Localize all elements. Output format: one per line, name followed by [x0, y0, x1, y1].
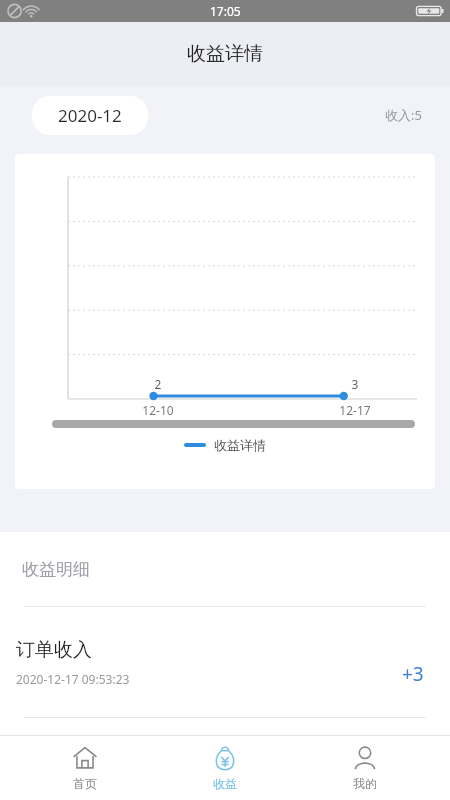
- staticText: 收益详情: [187, 42, 263, 66]
- staticText: 12-10: [132, 402, 184, 418]
- button[interactable]: 首页: [30, 745, 140, 791]
- staticText: 3: [343, 376, 367, 392]
- button[interactable]: 我的: [310, 745, 420, 791]
- staticText: 首页: [73, 776, 97, 791]
- staticText: 收益明细: [22, 559, 90, 580]
- staticText: 17:05: [210, 3, 241, 19]
- staticText: 2020-12: [58, 104, 122, 127]
- button[interactable]: 订单收入: [0, 607, 450, 717]
- staticText: 订单收入: [16, 638, 92, 662]
- staticText: 收益详情: [214, 437, 266, 453]
- staticText: 收入:5: [385, 106, 422, 124]
- staticText: 我的: [353, 776, 377, 791]
- staticText: 2020-12-17 09:53:23: [16, 671, 130, 687]
- staticText: 12-17: [329, 402, 381, 418]
- button[interactable]: 2020-12: [32, 96, 148, 135]
- staticText: +3: [402, 661, 424, 687]
- staticText: 2: [146, 376, 170, 392]
- staticText: 收益: [213, 776, 237, 791]
- button[interactable]: 收益: [170, 745, 280, 791]
